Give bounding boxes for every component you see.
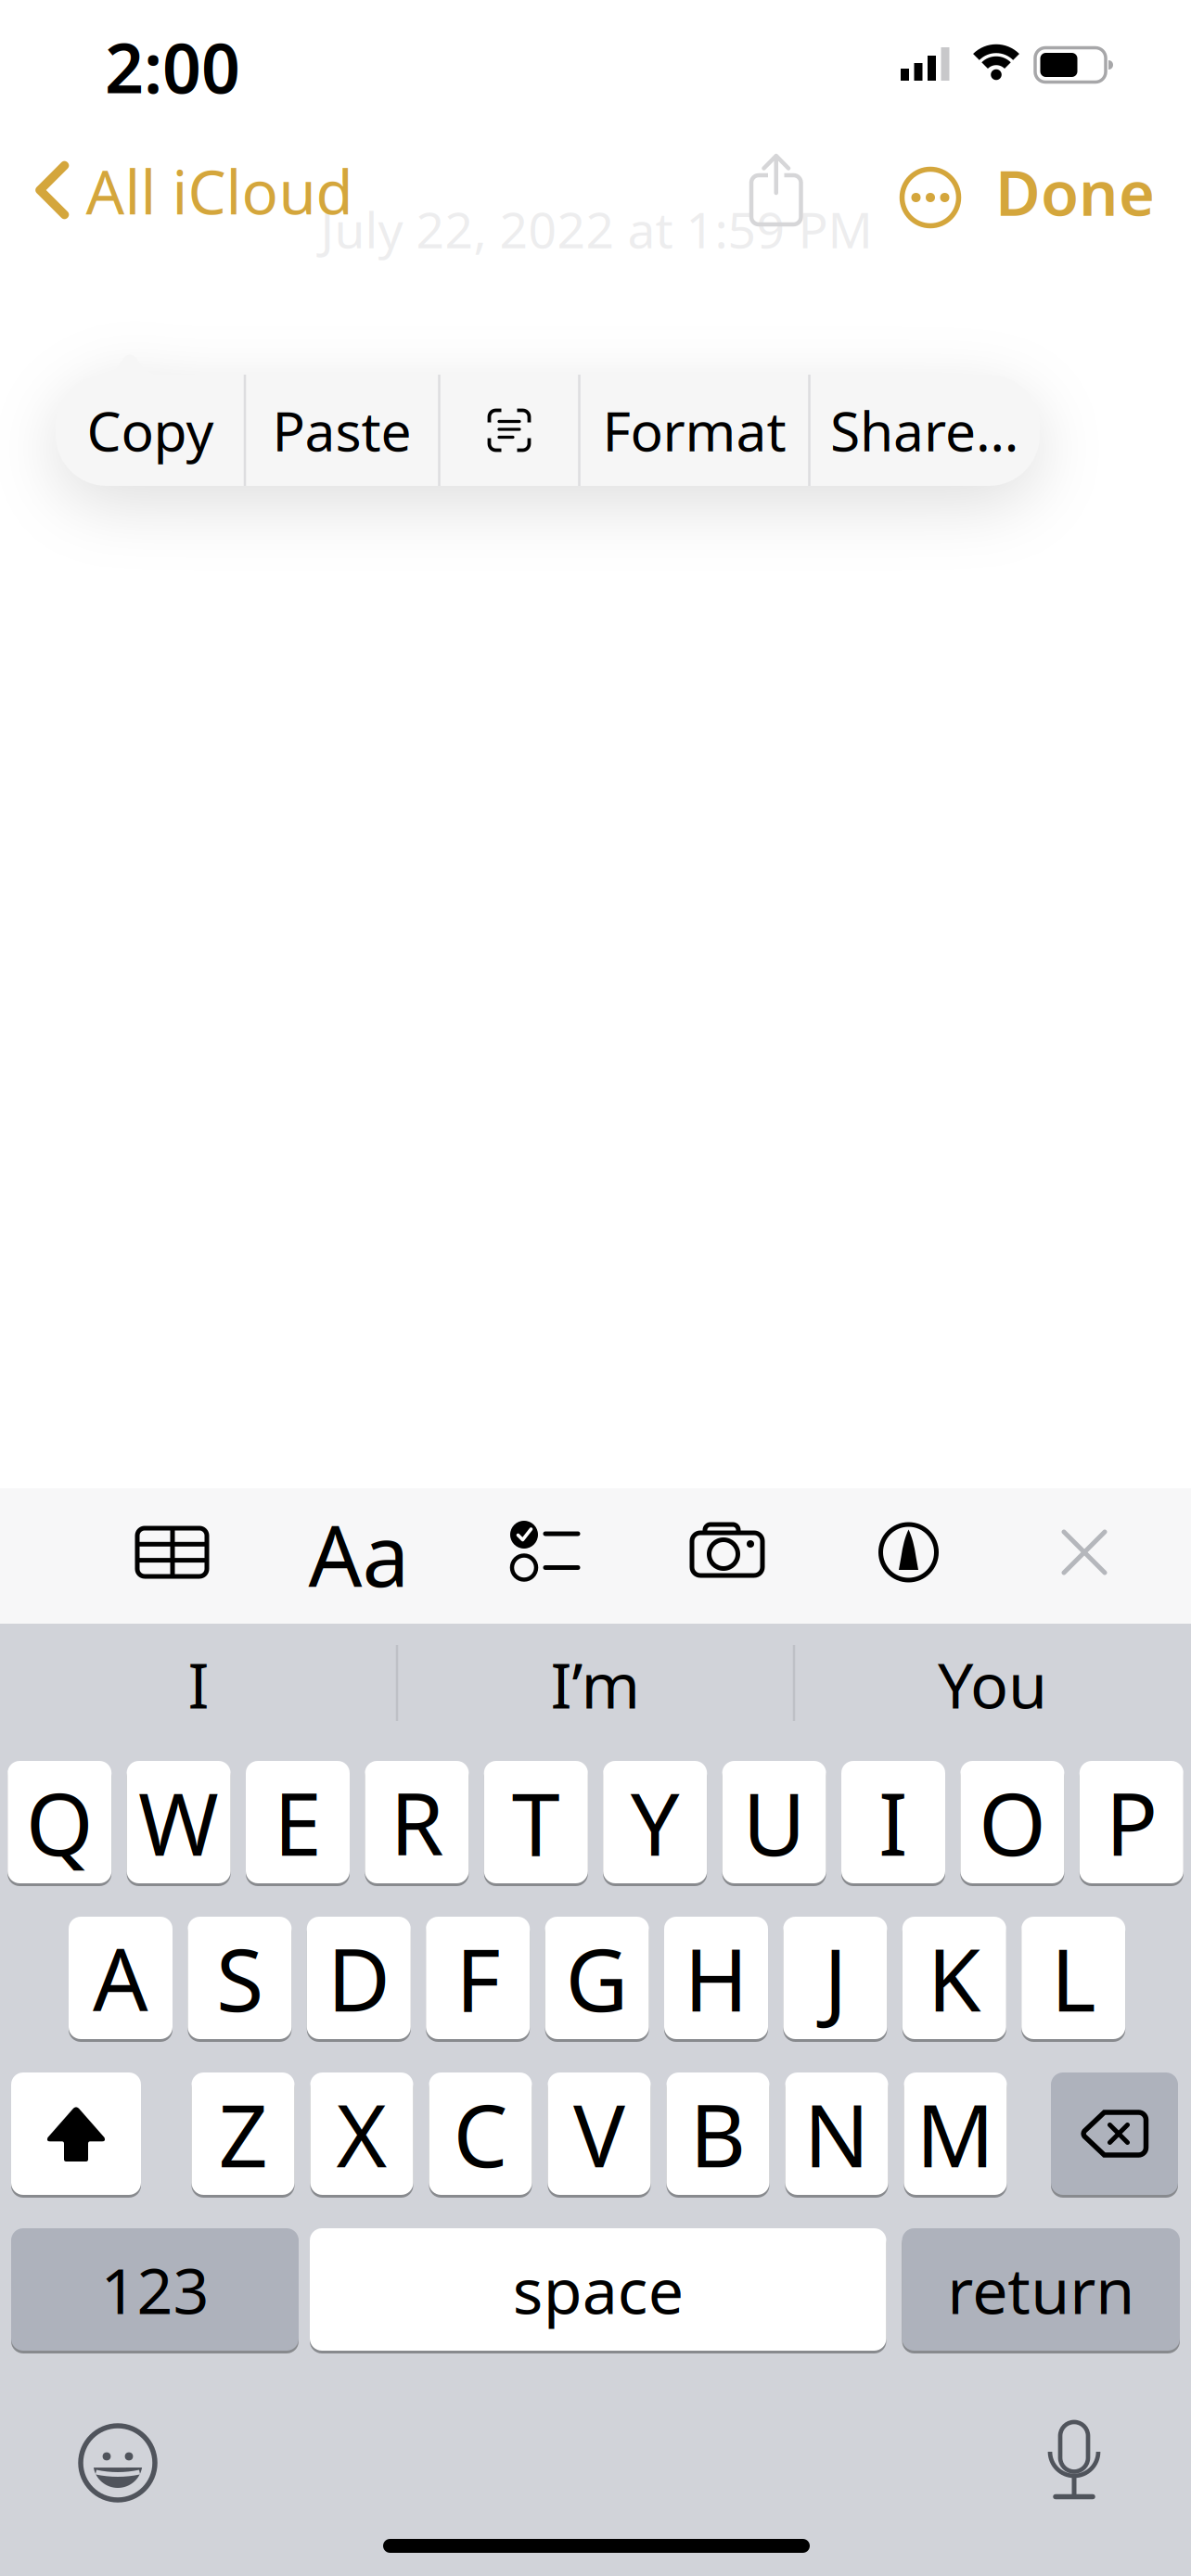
button[interactable]: B <box>666 2072 769 2195</box>
staticText: M <box>916 2076 995 2191</box>
staticText: July 22, 2022 at 1:59 PM <box>320 196 872 262</box>
staticText: 123 <box>101 2248 209 2331</box>
staticText: W <box>138 1765 219 1880</box>
staticText: L <box>1051 1920 1096 2035</box>
button[interactable]: Aa <box>303 1517 415 1591</box>
staticText: E <box>274 1765 322 1880</box>
staticText: P <box>1105 1765 1157 1880</box>
button[interactable]: X <box>310 2072 413 2195</box>
button[interactable] <box>685 1521 769 1578</box>
button[interactable] <box>1036 2413 1110 2506</box>
staticText: K <box>927 1920 981 2035</box>
staticText: O <box>978 1765 1046 1880</box>
button[interactable] <box>505 1519 583 1584</box>
staticText: X <box>336 2076 387 2191</box>
button[interactable] <box>135 1525 209 1579</box>
button[interactable]: T <box>484 1761 588 1883</box>
button[interactable]: Q <box>8 1761 111 1883</box>
staticText: F <box>456 1920 500 2035</box>
staticText: U <box>743 1765 806 1880</box>
staticText: T <box>512 1765 560 1880</box>
button[interactable]: Share… <box>811 376 1037 485</box>
button[interactable]: U <box>722 1761 826 1883</box>
staticText: 2:00 <box>105 22 240 112</box>
button[interactable] <box>900 167 961 228</box>
button[interactable] <box>441 376 577 485</box>
button[interactable] <box>1059 1527 1109 1577</box>
button[interactable]: Paste <box>247 376 437 485</box>
button[interactable]: return <box>902 2228 1180 2351</box>
button[interactable]: 123 <box>11 2228 299 2351</box>
button[interactable]: E <box>246 1761 350 1883</box>
staticText: H <box>684 1920 748 2035</box>
button[interactable] <box>11 2072 141 2195</box>
staticText: You <box>938 1642 1047 1726</box>
button[interactable]: W <box>127 1761 231 1883</box>
button[interactable]: F <box>426 1917 530 2039</box>
button[interactable]: Copy <box>58 376 243 485</box>
button[interactable] <box>876 1520 941 1585</box>
button[interactable]: Format <box>581 376 807 485</box>
button[interactable]: You <box>807 1636 1178 1732</box>
button[interactable]: M <box>904 2072 1007 2195</box>
button[interactable]: K <box>902 1917 1006 2039</box>
button[interactable]: Done <box>973 161 1177 223</box>
staticText: R <box>390 1765 444 1880</box>
staticText: C <box>453 2076 508 2191</box>
button[interactable]: I’m <box>410 1636 781 1732</box>
staticText: B <box>690 2076 746 2191</box>
staticText: Y <box>630 1765 680 1880</box>
staticText: I <box>188 1642 209 1726</box>
staticText: Paste <box>272 394 411 466</box>
button[interactable]: L <box>1021 1917 1125 2039</box>
staticText: I <box>878 1765 908 1880</box>
staticText: All iCloud <box>86 151 353 231</box>
staticText: Aa <box>308 1498 410 1610</box>
button[interactable]: S <box>188 1917 292 2039</box>
staticText: return <box>947 2248 1135 2331</box>
button[interactable]: I <box>13 1636 384 1732</box>
button[interactable]: I <box>841 1761 945 1883</box>
staticText: V <box>573 2076 625 2191</box>
button[interactable]: space <box>310 2228 886 2351</box>
button[interactable] <box>748 151 805 225</box>
staticText: J <box>824 1920 847 2035</box>
button[interactable]: G <box>545 1917 649 2039</box>
staticText: Copy <box>87 394 214 466</box>
button[interactable]: All iCloud <box>34 158 368 221</box>
button[interactable]: Z <box>192 2072 295 2195</box>
staticText: Z <box>218 2076 268 2191</box>
button[interactable]: D <box>307 1917 411 2039</box>
staticText: D <box>327 1920 390 2035</box>
button[interactable]: N <box>785 2072 888 2195</box>
staticText: G <box>565 1920 629 2035</box>
staticText: Q <box>26 1765 93 1880</box>
button[interactable]: O <box>960 1761 1064 1883</box>
button[interactable]: P <box>1080 1761 1183 1883</box>
staticText: N <box>804 2076 870 2191</box>
button[interactable]: A <box>69 1917 173 2039</box>
staticText: Share… <box>830 394 1018 466</box>
staticText: A <box>93 1920 148 2035</box>
staticText: space <box>513 2248 683 2331</box>
button[interactable]: C <box>429 2072 532 2195</box>
staticText: Done <box>995 151 1155 233</box>
button[interactable]: H <box>664 1917 768 2039</box>
button[interactable]: Y <box>603 1761 707 1883</box>
staticText: Format <box>602 394 786 466</box>
button[interactable] <box>76 2421 160 2505</box>
button[interactable] <box>1051 2072 1178 2195</box>
staticText: S <box>216 1920 263 2035</box>
button[interactable]: R <box>365 1761 469 1883</box>
staticText: I’m <box>551 1642 640 1726</box>
button[interactable]: J <box>783 1917 887 2039</box>
button[interactable]: V <box>548 2072 651 2195</box>
